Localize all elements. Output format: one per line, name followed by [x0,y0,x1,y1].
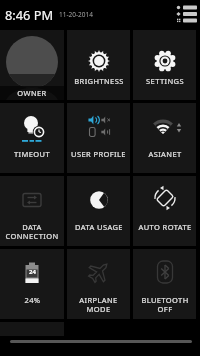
button[interactable]: DATA CONNECTION [0,176,64,246]
staticText: TIMEOUT [14,149,50,159]
button[interactable]: BRIGHTNESS [67,30,130,100]
staticText: USER PROFILE [71,149,126,159]
staticText: ASIANET [148,149,182,159]
button[interactable]: OWNER [0,30,64,100]
staticText: DATA CONNECTION [5,222,59,241]
staticText: BRIGHTNESS [74,76,124,86]
staticText: 11-20-2014 [59,10,93,19]
button[interactable]: AUTO ROTATE [133,176,196,246]
staticText: OWNER [17,88,47,98]
staticText: AIRPLANE MODE [79,295,118,314]
button[interactable] [175,3,197,25]
staticText: 24 [29,268,36,276]
staticText: DATA USAGE [75,222,123,232]
button[interactable]: BLUETOOTH OFF [133,249,196,319]
staticText: 8:46 PM [5,6,54,23]
button[interactable]: USER PROFILE [67,103,130,173]
button[interactable]: ASIANET [133,103,196,173]
button[interactable]: AIRPLANE MODE [67,249,130,319]
button[interactable]: DATA USAGE [67,176,130,246]
staticText: SETTINGS [146,76,184,86]
button[interactable]: 24 [0,249,64,319]
staticText: AUTO ROTATE [138,222,192,232]
button[interactable]: TIMEOUT [0,103,64,173]
staticText: BLUETOOTH OFF [141,295,189,314]
staticText: 24% [24,295,41,305]
button[interactable]: SETTINGS [133,30,196,100]
